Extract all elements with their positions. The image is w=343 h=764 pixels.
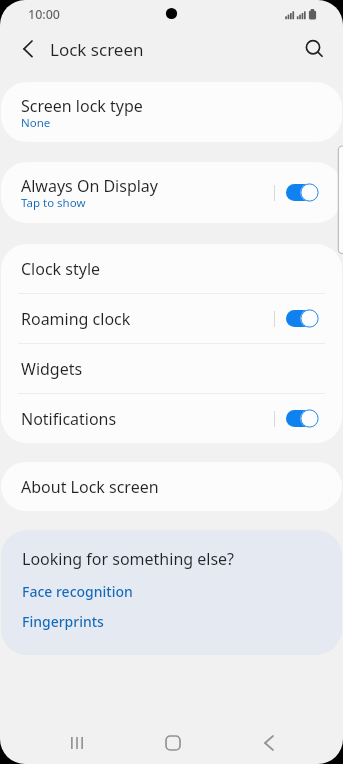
button[interactable]: Always On Display: [1, 162, 342, 223]
button[interactable]: Roaming clock: [1, 294, 342, 343]
button[interactable]: Recents: [53, 719, 101, 764]
staticText: Clock style: [21, 258, 101, 280]
staticText: Screen lock type: [21, 95, 143, 117]
staticText: Notifications: [21, 408, 117, 430]
button[interactable]: Screen lock type: [1, 82, 342, 142]
staticText: About Lock screen: [21, 476, 159, 498]
staticText: Face recognition: [22, 582, 133, 601]
button[interactable]: Home: [149, 719, 197, 764]
staticText: Widgets: [21, 358, 83, 380]
button[interactable]: Toggle: [286, 183, 319, 202]
staticText: Always On Display: [21, 175, 159, 197]
button[interactable]: Back: [245, 719, 293, 764]
button[interactable]: Clock style: [1, 244, 342, 293]
staticText: Roaming clock: [21, 308, 131, 330]
staticText: Looking for something else?: [22, 548, 235, 570]
staticText: Lock screen: [50, 38, 144, 61]
button[interactable]: Toggle: [286, 409, 319, 428]
button[interactable]: Face recognition: [1, 576, 342, 606]
button[interactable]: About Lock screen: [1, 462, 342, 511]
staticText: Tap to show: [21, 195, 86, 211]
button[interactable]: Back: [16, 36, 42, 62]
button[interactable]: Fingerprints: [1, 606, 342, 636]
button[interactable]: Notifications: [1, 394, 342, 443]
button[interactable]: Search: [299, 34, 329, 64]
staticText: 10:00: [28, 6, 61, 23]
staticText: Fingerprints: [22, 612, 104, 631]
button[interactable]: Toggle: [286, 309, 319, 328]
button[interactable]: Widgets: [1, 344, 342, 393]
staticText: None: [21, 115, 51, 131]
